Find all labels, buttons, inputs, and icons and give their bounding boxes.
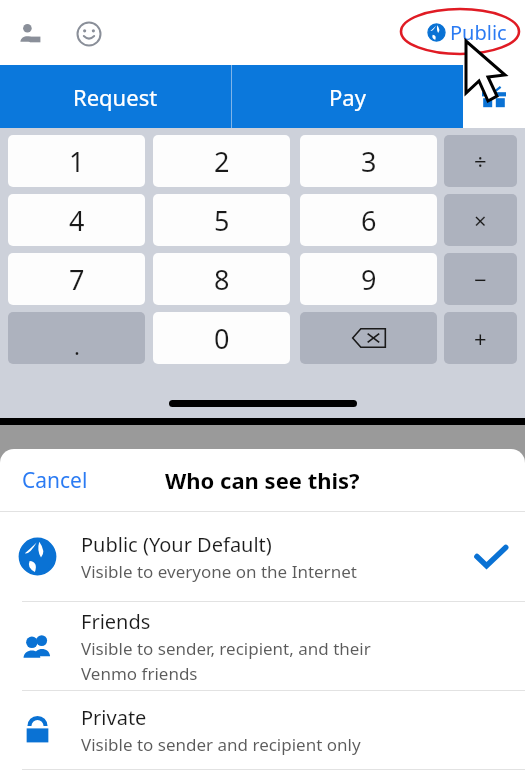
staticText: Public <box>450 19 507 46</box>
button[interactable]: 5 <box>153 194 290 246</box>
button[interactable]: 0 <box>153 312 290 364</box>
staticText: 6 <box>361 202 377 239</box>
button[interactable]: 2 <box>153 135 290 187</box>
staticText: Request <box>73 82 158 112</box>
button[interactable]: Private <box>0 691 525 769</box>
staticText: Venmo friends <box>81 662 198 685</box>
button[interactable]: Public (Your Default) <box>0 512 525 601</box>
staticText: + <box>474 323 487 353</box>
staticText: Friends <box>81 608 151 635</box>
staticText: 9 <box>361 261 377 298</box>
staticText: Visible to sender, recipient, and their <box>81 637 371 660</box>
button[interactable]: 4 <box>8 194 145 246</box>
staticText: − <box>474 264 487 294</box>
button[interactable]: 9 <box>300 253 437 305</box>
staticText: ÷ <box>474 146 487 176</box>
staticText: Public (Your Default) <box>81 531 272 558</box>
button[interactable]: Choose recipient <box>10 14 50 54</box>
button[interactable]: 7 <box>8 253 145 305</box>
staticText: Who can see this? <box>165 465 360 495</box>
staticText: 1 <box>69 143 85 180</box>
staticText: Visible to sender and recipient only <box>81 733 361 756</box>
button[interactable]: 8 <box>153 253 290 305</box>
staticText: 2 <box>214 143 230 180</box>
staticText: 5 <box>214 202 230 239</box>
staticText: . <box>74 331 80 361</box>
button[interactable] <box>300 312 437 364</box>
staticText: Pay <box>329 82 366 112</box>
staticText: Cancel <box>22 466 88 495</box>
button[interactable]: − <box>444 253 517 305</box>
staticText: × <box>474 205 487 235</box>
staticText: Private <box>81 704 147 731</box>
staticText: 4 <box>69 202 85 239</box>
button[interactable]: Gift <box>463 65 525 128</box>
staticText: 3 <box>361 143 377 180</box>
button[interactable]: 1 <box>8 135 145 187</box>
button[interactable]: 6 <box>300 194 437 246</box>
button[interactable]: 3 <box>300 135 437 187</box>
staticText: 7 <box>69 261 85 298</box>
button[interactable]: × <box>444 194 517 246</box>
button[interactable]: Cancel <box>22 466 88 495</box>
button[interactable]: Friends <box>0 602 525 690</box>
button[interactable]: ÷ <box>444 135 517 187</box>
staticText: 8 <box>214 261 230 298</box>
staticText: Visible to everyone on the Internet <box>81 560 357 583</box>
button[interactable]: + <box>444 312 517 364</box>
button[interactable]: Pay <box>232 65 463 128</box>
button[interactable]: . <box>8 312 145 364</box>
button[interactable]: Emoji <box>69 14 109 54</box>
button[interactable]: Public <box>428 19 507 46</box>
staticText: 0 <box>214 320 230 357</box>
button[interactable]: Request <box>0 65 231 128</box>
